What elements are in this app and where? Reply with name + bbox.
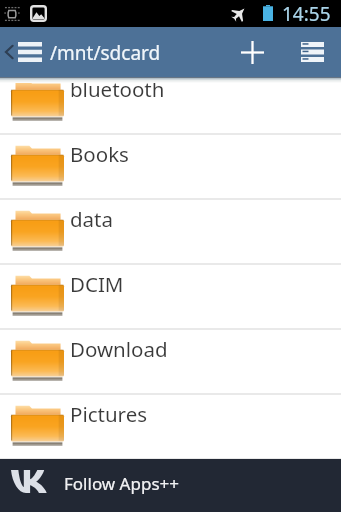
button[interactable]: Download — [0, 329, 341, 394]
button[interactable]: bluetooth — [0, 77, 341, 134]
staticText: bluetooth — [70, 77, 165, 103]
staticText: data — [70, 205, 114, 233]
staticText: /mnt/sdcard — [50, 40, 161, 66]
button[interactable]: DCIM — [0, 264, 341, 329]
staticText: Download — [70, 335, 168, 363]
button[interactable]: View options — [289, 27, 335, 77]
staticText: 14:55 — [282, 1, 331, 27]
staticText: Books — [70, 140, 129, 168]
staticText: DCIM — [70, 270, 124, 298]
staticText: Pictures — [70, 400, 148, 428]
button[interactable]: data — [0, 199, 341, 264]
button[interactable]: Books — [0, 134, 341, 199]
button[interactable]: Add — [229, 27, 275, 77]
button[interactable]: Follow Apps++ — [0, 459, 341, 512]
button[interactable]: Navigate up — [0, 27, 47, 77]
button[interactable]: Pictures — [0, 394, 341, 459]
staticText: Follow Apps++ — [64, 472, 179, 495]
